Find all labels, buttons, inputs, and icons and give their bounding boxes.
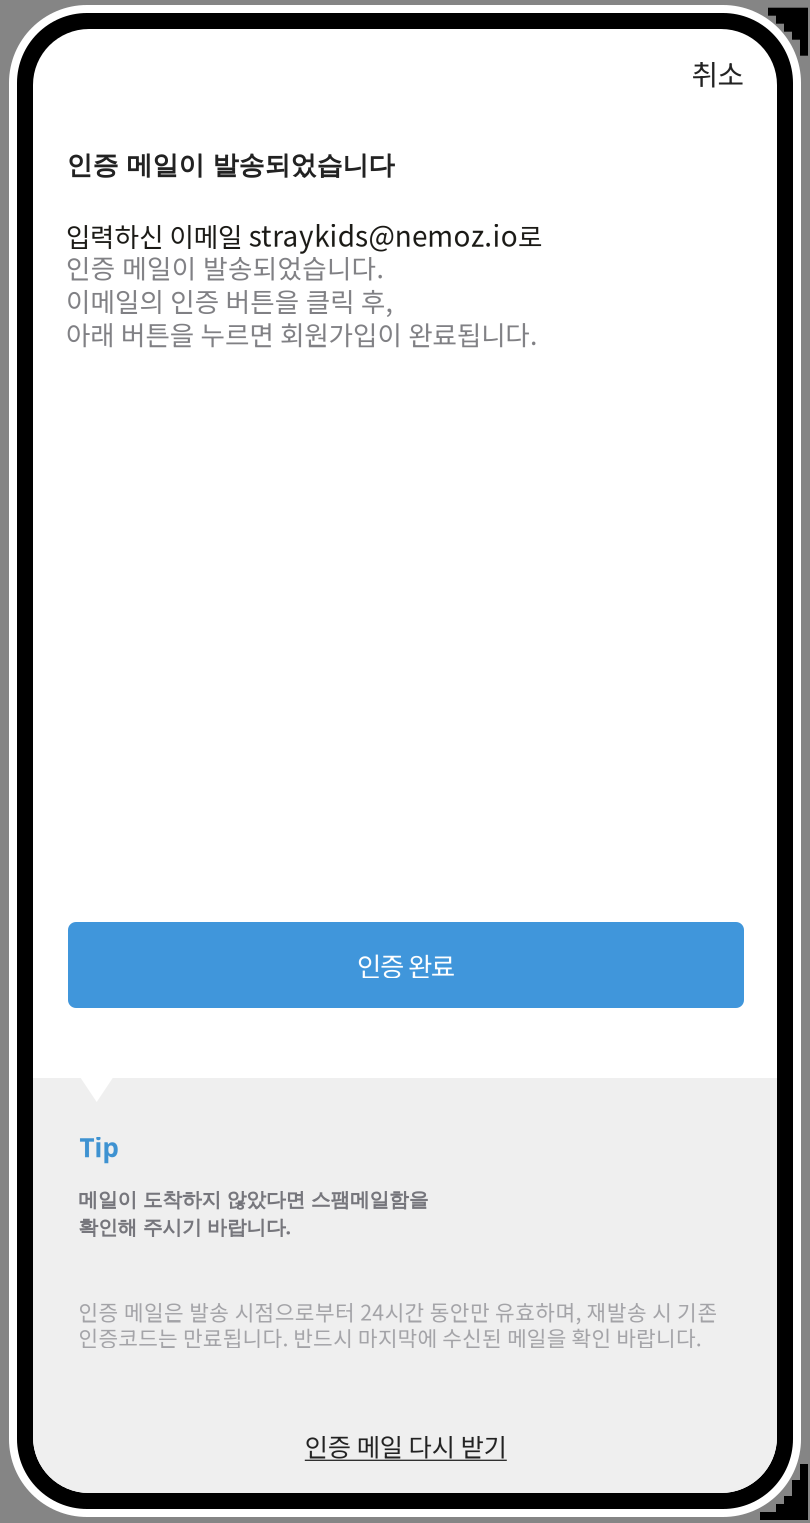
button[interactable]: 취소 (676, 40, 760, 106)
staticText: 메일이 도착하지 않았다면 스팸메일함을 (78, 1188, 429, 1212)
staticText: 입력하신 이메일 straykids@nemoz.io로 (66, 214, 542, 255)
button[interactable]: 인증 메일 다시 받기 (281, 1413, 531, 1478)
staticText: 이메일의 인증 버튼을 클릭 후, (66, 281, 392, 319)
staticText: 확인해 주시기 바랍니다. (78, 1213, 291, 1240)
staticText: Tip (79, 1129, 118, 1165)
staticText: 아래 버튼을 누르면 회원가입이 완료됩니다. (66, 314, 537, 353)
staticText: 취소 (692, 52, 744, 94)
staticText: 인증 메일 다시 받기 (305, 1427, 507, 1464)
staticText: 인증 메일이 발송되었습니다 (66, 149, 394, 182)
staticText: 인증코드는 만료됩니다. 반드시 마지막에 수신된 메일을 확인 바랍니다. (78, 1322, 702, 1353)
staticText: 인증 완료 (357, 946, 455, 984)
staticText: 인증 메일이 발송되었습니다. (66, 248, 383, 286)
button[interactable]: 인증 완료 (68, 922, 744, 1008)
staticText: 인증 메일은 발송 시점으로부터 24시간 동안만 유효하며, 재발송 시 기존 (78, 1296, 717, 1327)
